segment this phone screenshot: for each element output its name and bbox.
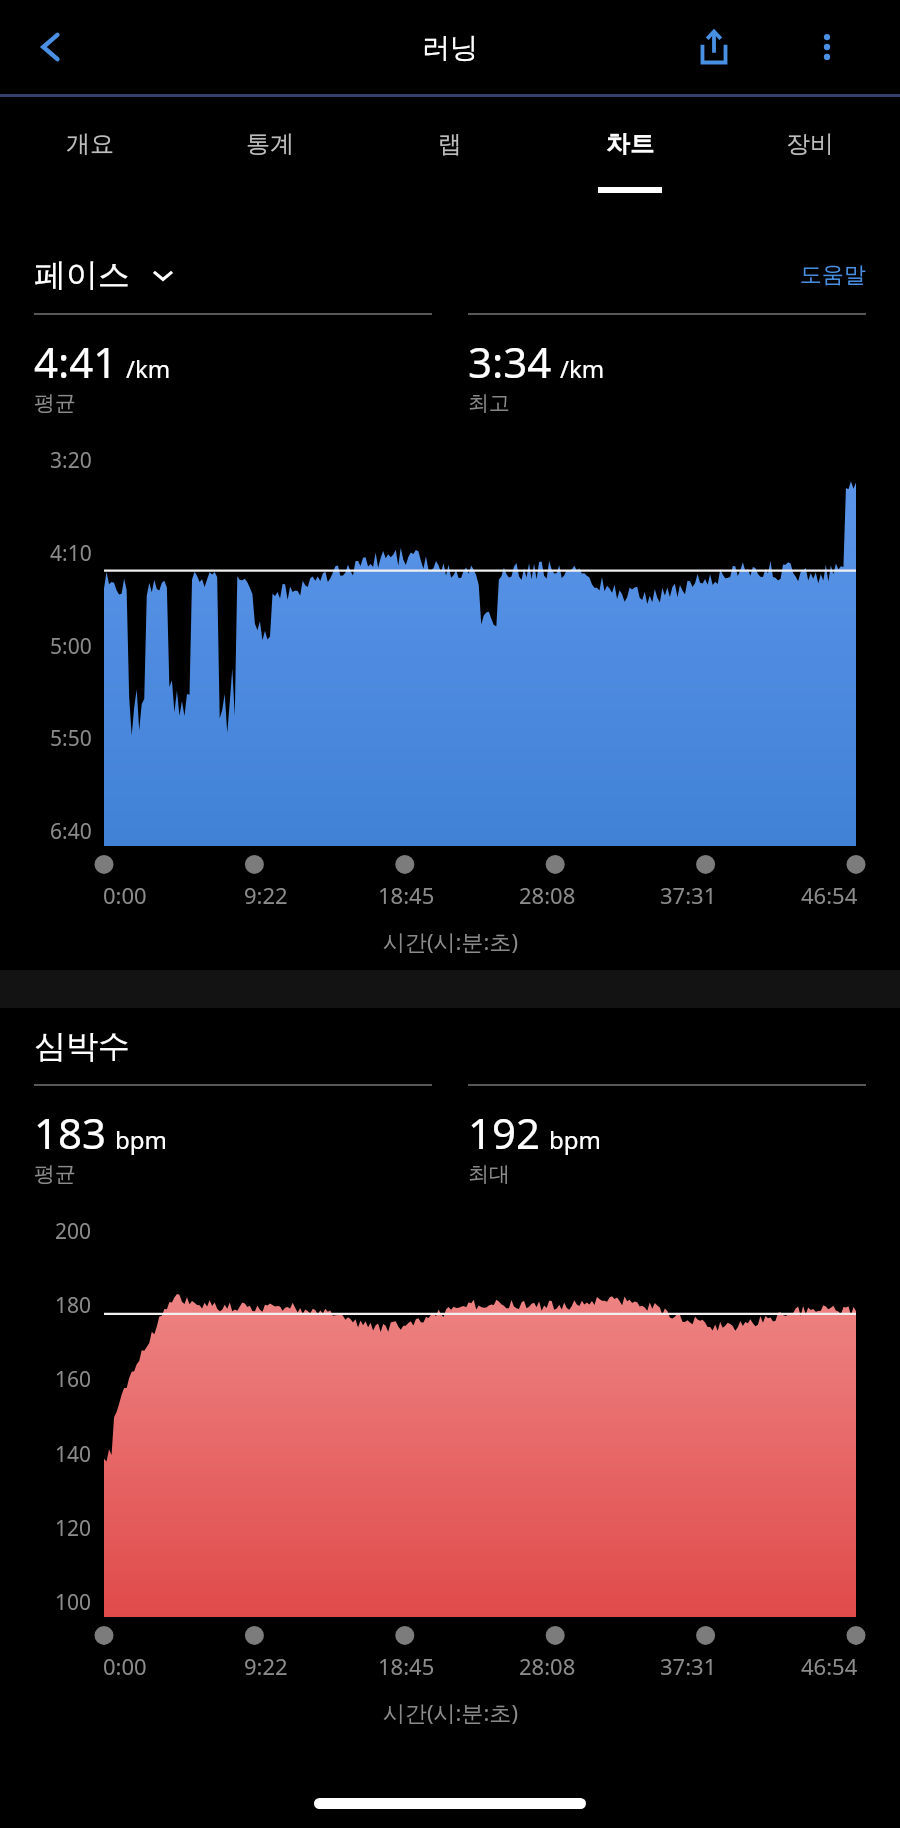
staticText: 18:45 xyxy=(378,1651,435,1681)
staticText: 192 xyxy=(468,1104,541,1161)
staticText: 4:10 xyxy=(50,539,92,568)
staticText: 랩 xyxy=(438,129,462,159)
staticText: 183 xyxy=(34,1104,107,1161)
staticText: 차트 xyxy=(606,129,654,159)
staticText: 시간(시:분:초) xyxy=(383,1697,518,1727)
staticText: 9:22 xyxy=(244,880,288,910)
button[interactable]: Share xyxy=(683,16,745,78)
staticText: 통계 xyxy=(246,129,294,159)
button[interactable]: 통계 xyxy=(180,97,360,237)
button[interactable]: 장비 xyxy=(720,97,900,237)
staticText: /km xyxy=(560,352,605,385)
button[interactable]: 개요 xyxy=(0,97,180,237)
staticText: /km xyxy=(126,352,171,385)
staticText: 시간(시:분:초) xyxy=(383,926,518,956)
staticText: 46:54 xyxy=(801,880,858,910)
staticText: 3:34 xyxy=(468,333,552,390)
staticText: 37:31 xyxy=(660,1651,717,1681)
staticText: 0:00 xyxy=(103,1651,147,1681)
staticText: 37:31 xyxy=(660,880,717,910)
staticText: 4:41 xyxy=(34,333,118,390)
staticText: 도움말 xyxy=(800,261,866,289)
staticText: 최고 xyxy=(468,390,510,416)
button[interactable]: 차트 xyxy=(540,97,720,237)
staticText: 46:54 xyxy=(801,1651,858,1681)
button[interactable]: More options xyxy=(796,16,858,78)
staticText: 러닝 xyxy=(422,30,478,65)
staticText: 120 xyxy=(55,1514,92,1543)
staticText: bpm xyxy=(115,1123,167,1156)
staticText: 평균 xyxy=(34,1161,76,1187)
button[interactable]: Back xyxy=(20,16,82,78)
staticText: 9:22 xyxy=(244,1651,288,1681)
staticText: 장비 xyxy=(786,129,834,159)
staticText: 200 xyxy=(55,1217,92,1246)
staticText: 18:45 xyxy=(378,880,435,910)
staticText: 160 xyxy=(55,1365,92,1394)
staticText: 28:08 xyxy=(519,1651,576,1681)
staticText: 100 xyxy=(55,1588,92,1617)
staticText: 140 xyxy=(55,1440,92,1469)
staticText: 평균 xyxy=(34,390,76,416)
button[interactable]: 도움말 xyxy=(800,261,866,289)
staticText: 최대 xyxy=(468,1161,510,1187)
staticText: 심박수 xyxy=(34,1026,130,1066)
staticText: 28:08 xyxy=(519,880,576,910)
button[interactable]: 페이스 xyxy=(34,255,176,295)
staticText: 5:00 xyxy=(50,632,92,661)
staticText: 180 xyxy=(55,1291,92,1320)
staticText: 페이스 xyxy=(34,255,130,295)
staticText: 개요 xyxy=(66,129,114,159)
staticText: 3:20 xyxy=(50,446,92,475)
button[interactable]: 랩 xyxy=(360,97,540,237)
staticText: 6:40 xyxy=(50,817,92,846)
staticText: bpm xyxy=(549,1123,601,1156)
staticText: 0:00 xyxy=(103,880,147,910)
staticText: 5:50 xyxy=(50,724,92,753)
